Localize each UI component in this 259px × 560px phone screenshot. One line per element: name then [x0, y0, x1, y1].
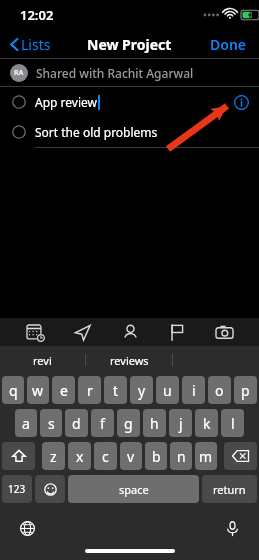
button[interactable]: h	[143, 409, 166, 437]
staticText: revi	[33, 353, 52, 368]
button[interactable]: Details	[234, 95, 249, 110]
button[interactable]: y	[130, 376, 153, 404]
button[interactable]: z	[42, 442, 65, 470]
button[interactable]: x	[68, 442, 91, 470]
button[interactable]: Done	[198, 31, 259, 58]
staticText: reviews	[110, 353, 149, 368]
staticText: u	[163, 381, 172, 400]
staticText: a	[22, 414, 30, 433]
staticText: e	[60, 381, 68, 400]
button[interactable]: Emoji	[35, 475, 65, 503]
staticText: p	[241, 381, 250, 400]
staticText: t	[113, 381, 119, 400]
staticText: o	[215, 381, 224, 400]
button[interactable]: Flag	[164, 319, 190, 345]
staticText: Shared with Rachit Agarwal	[36, 65, 194, 81]
staticText: d	[72, 414, 81, 433]
button[interactable]: Backspace	[224, 442, 257, 470]
staticText: v	[127, 447, 135, 466]
button[interactable]: v	[120, 442, 142, 470]
staticText: w	[32, 381, 44, 400]
button[interactable]: p	[234, 376, 257, 404]
button[interactable]: e	[52, 376, 75, 404]
staticText: c	[102, 447, 109, 466]
staticText: App review	[35, 94, 97, 110]
staticText: r	[87, 381, 93, 400]
button[interactable]: Add date	[22, 319, 48, 345]
staticText: g	[124, 414, 133, 433]
button[interactable]: g	[117, 409, 140, 437]
button[interactable]: c	[94, 442, 117, 470]
button[interactable]: f	[91, 409, 114, 437]
staticText: b	[152, 447, 161, 466]
button[interactable]: k	[195, 409, 218, 437]
button[interactable]: u	[156, 376, 179, 404]
staticText: RA	[14, 68, 24, 78]
button[interactable]: q	[2, 376, 24, 404]
staticText: q	[9, 381, 18, 400]
button[interactable]: RA	[0, 59, 259, 86]
staticText: n	[177, 447, 186, 466]
button[interactable]: n	[170, 442, 192, 470]
button[interactable]: Assign person	[117, 319, 143, 345]
staticText: k	[203, 414, 211, 433]
button[interactable]: m	[195, 442, 217, 470]
button[interactable]: l	[221, 409, 244, 437]
button[interactable]: Add location	[69, 319, 95, 345]
button[interactable]: a	[15, 409, 37, 437]
button[interactable]: Toggle complete	[0, 87, 259, 117]
staticText: 123	[8, 482, 26, 496]
button[interactable]: i	[182, 376, 205, 404]
staticText: f	[100, 414, 105, 433]
button[interactable]: d	[65, 409, 88, 437]
button[interactable]: r	[78, 376, 101, 404]
staticText: m	[199, 447, 213, 466]
button[interactable]: b	[145, 442, 167, 470]
button[interactable]: Toggle complete	[12, 125, 26, 139]
button[interactable]: s	[40, 409, 62, 437]
button[interactable]: o	[208, 376, 231, 404]
button[interactable]: Change keyboard	[14, 515, 40, 541]
button[interactable]: Toggle complete	[12, 95, 26, 109]
staticText: y	[138, 381, 146, 400]
button[interactable]: revi	[0, 346, 85, 374]
staticText: z	[50, 447, 57, 466]
button[interactable]: Dictation	[219, 515, 245, 541]
button[interactable]: Add photo	[211, 319, 237, 345]
button[interactable]: w	[27, 376, 49, 404]
button[interactable]: space	[68, 475, 199, 503]
staticText: 12:02	[20, 6, 54, 24]
staticText: space	[119, 482, 149, 497]
button[interactable]: Shift	[2, 442, 35, 470]
staticText: Sort the old problems	[35, 124, 158, 140]
staticText: Lists	[21, 35, 51, 54]
button[interactable]: 123	[2, 475, 32, 503]
staticText: i	[192, 381, 196, 400]
staticText: l	[231, 414, 235, 433]
staticText: h	[150, 414, 159, 433]
staticText: s	[48, 414, 55, 433]
staticText: return	[213, 482, 246, 497]
button[interactable]: Lists	[6, 32, 55, 57]
button[interactable]: j	[169, 409, 192, 437]
staticText: j	[179, 414, 183, 433]
button[interactable]: t	[104, 376, 127, 404]
staticText: x	[76, 447, 84, 466]
button[interactable]: return	[202, 475, 257, 503]
staticText: New Project	[87, 35, 172, 54]
button[interactable]: Toggle complete	[0, 117, 259, 147]
button[interactable]: reviews	[86, 346, 172, 374]
